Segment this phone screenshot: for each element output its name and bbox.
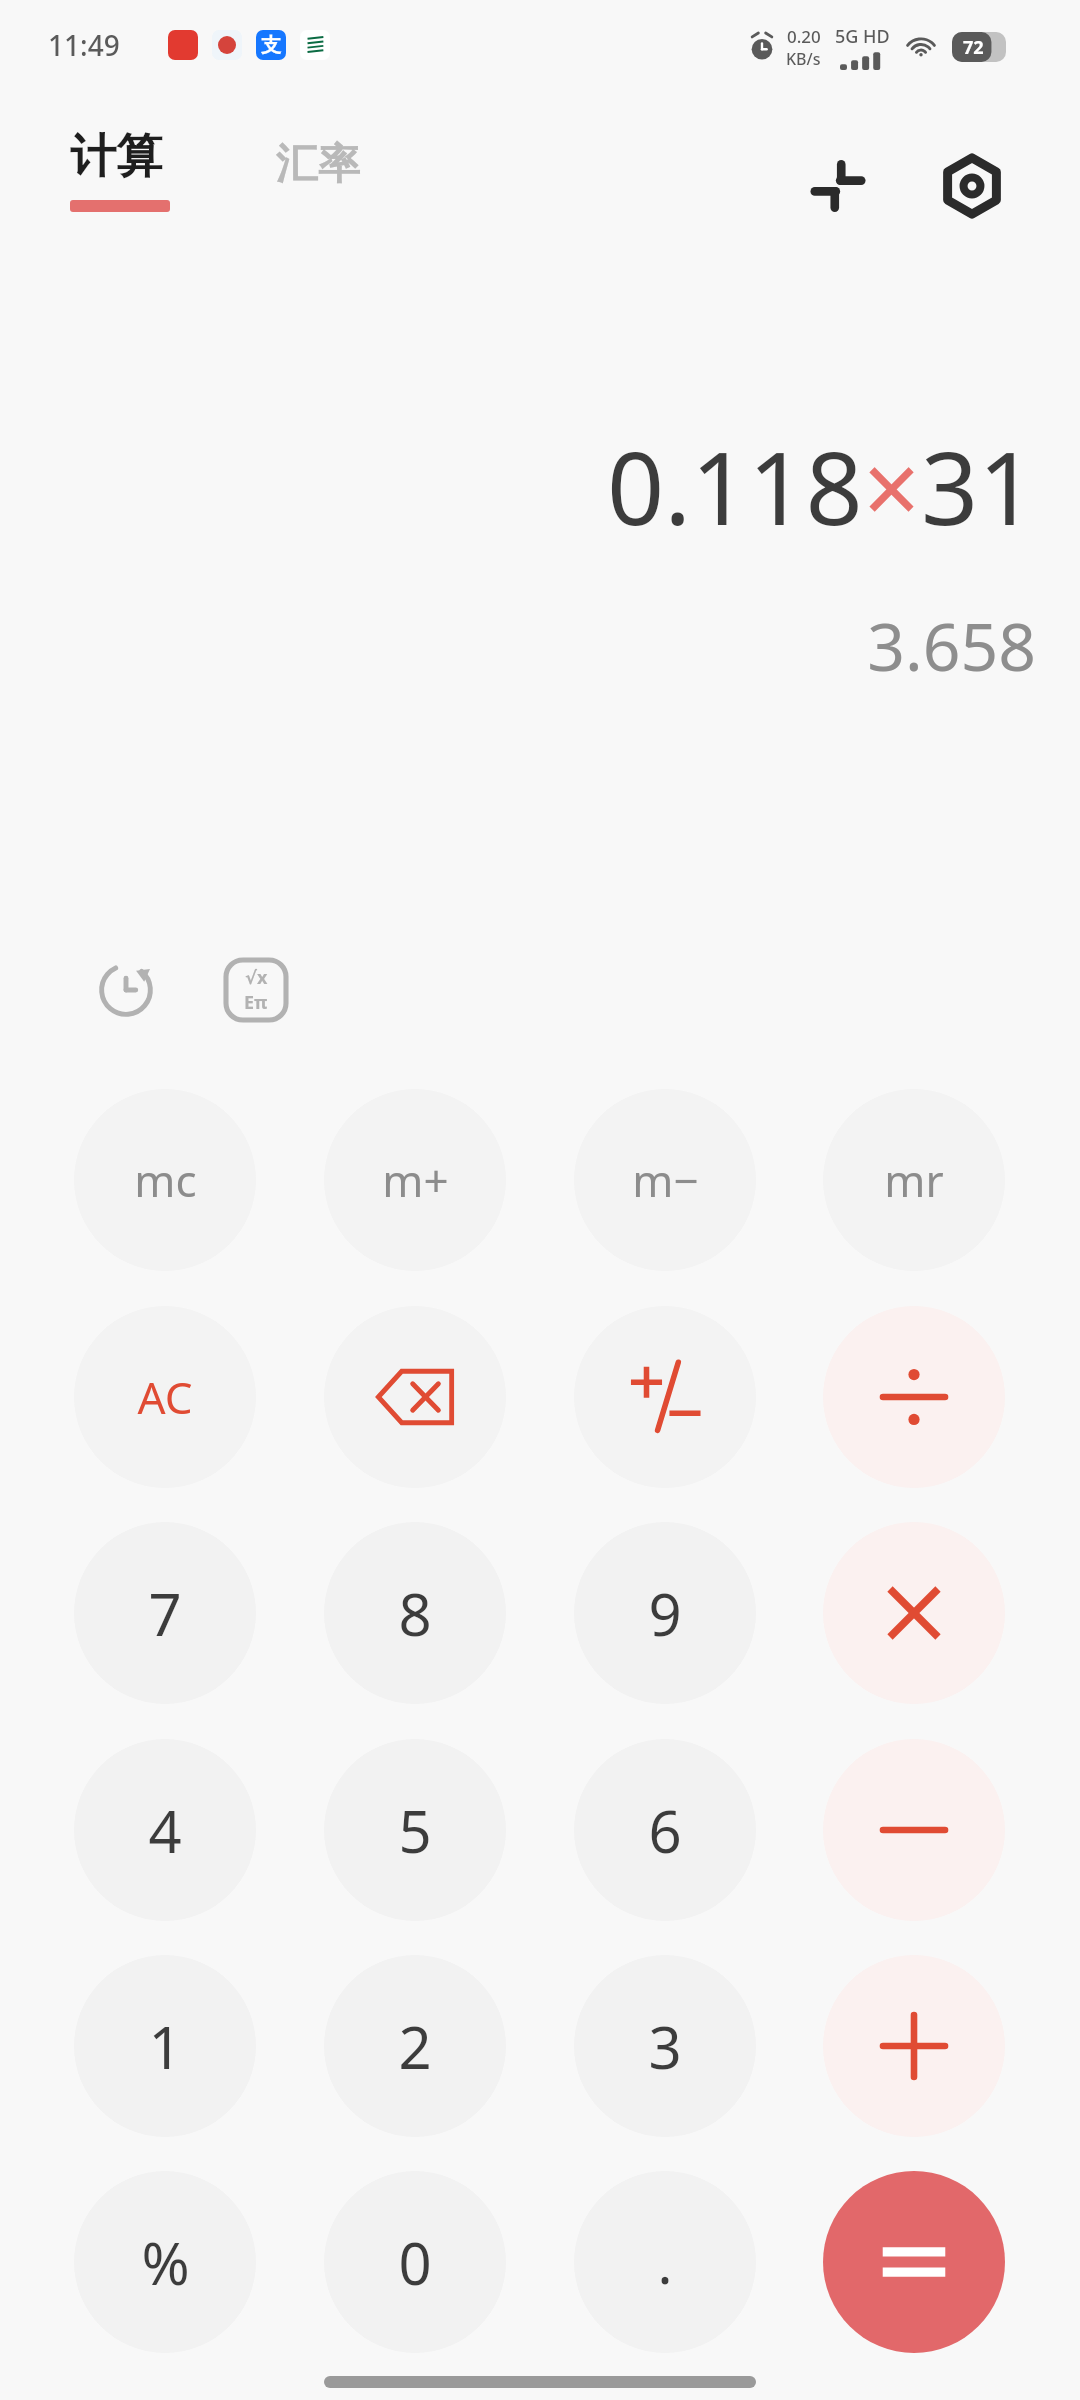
staticText: 3 [648, 2007, 682, 2086]
button[interactable]: Collapse [788, 136, 888, 236]
button[interactable]: 9 [574, 1522, 756, 1704]
button[interactable]: Backspace [324, 1306, 506, 1488]
staticText: 9 [648, 1574, 682, 1653]
button[interactable] [823, 1522, 1005, 1704]
staticText: 6 [648, 1791, 682, 1870]
staticText: 3.658 [0, 600, 1036, 690]
staticText: 0.118 [607, 418, 863, 554]
button[interactable]: 5 [324, 1739, 506, 1921]
button[interactable] [823, 1739, 1005, 1921]
button[interactable]: m− [574, 1089, 756, 1271]
button[interactable]: Plus minus [574, 1306, 756, 1488]
button[interactable]: 汇率 [268, 132, 368, 197]
staticText: 1 [148, 2007, 182, 2086]
button[interactable]: 2 [324, 1955, 506, 2137]
button[interactable] [823, 1306, 1005, 1488]
button[interactable]: History [78, 942, 174, 1038]
staticText: m+ [382, 1150, 449, 1210]
staticText: 0 [398, 2223, 432, 2302]
staticText: AC [137, 1367, 193, 1427]
staticText: 31 [921, 418, 1036, 554]
staticText: 2 [398, 2007, 432, 2086]
button[interactable]: % [74, 2171, 256, 2353]
button[interactable] [823, 1955, 1005, 2137]
button[interactable]: Settings [922, 136, 1022, 236]
staticText: mr [884, 1150, 944, 1210]
staticText: 4 [148, 1791, 182, 1870]
button[interactable]: 1 [74, 1955, 256, 2137]
button[interactable]: Scientific mode [208, 942, 304, 1038]
button[interactable]: . [574, 2171, 756, 2353]
staticText: . [657, 2224, 673, 2300]
button[interactable]: 6 [574, 1739, 756, 1921]
button[interactable]: 3 [574, 1955, 756, 2137]
staticText: 7 [148, 1574, 182, 1653]
staticText: 5 [398, 1791, 432, 1870]
staticText: 汇率 [276, 138, 360, 191]
staticText: 72 [963, 35, 984, 60]
staticText: mc [134, 1150, 197, 1210]
button[interactable]: 8 [324, 1522, 506, 1704]
staticText: KB/s [786, 48, 821, 70]
button[interactable]: 0 [324, 2171, 506, 2353]
button[interactable]: 计算 [66, 128, 174, 212]
button[interactable]: 4 [74, 1739, 256, 1921]
staticText: 0.20 [787, 25, 821, 48]
staticText: 11:49 [48, 26, 120, 64]
button[interactable] [823, 2171, 1005, 2353]
button[interactable]: 7 [74, 1522, 256, 1704]
staticText: 5G HD [835, 24, 890, 49]
staticText: Eπ [244, 990, 268, 1015]
button[interactable]: mr [823, 1089, 1005, 1271]
staticText: 8 [398, 1574, 432, 1653]
button[interactable]: m+ [324, 1089, 506, 1271]
button[interactable]: AC [74, 1306, 256, 1488]
button[interactable]: mc [74, 1089, 256, 1271]
staticText: √x [245, 965, 268, 990]
staticText: % [141, 2223, 190, 2302]
staticText: 支 [261, 33, 281, 58]
staticText: m− [632, 1150, 699, 1210]
staticText: 计算 [70, 128, 162, 186]
staticText: × [863, 418, 921, 554]
